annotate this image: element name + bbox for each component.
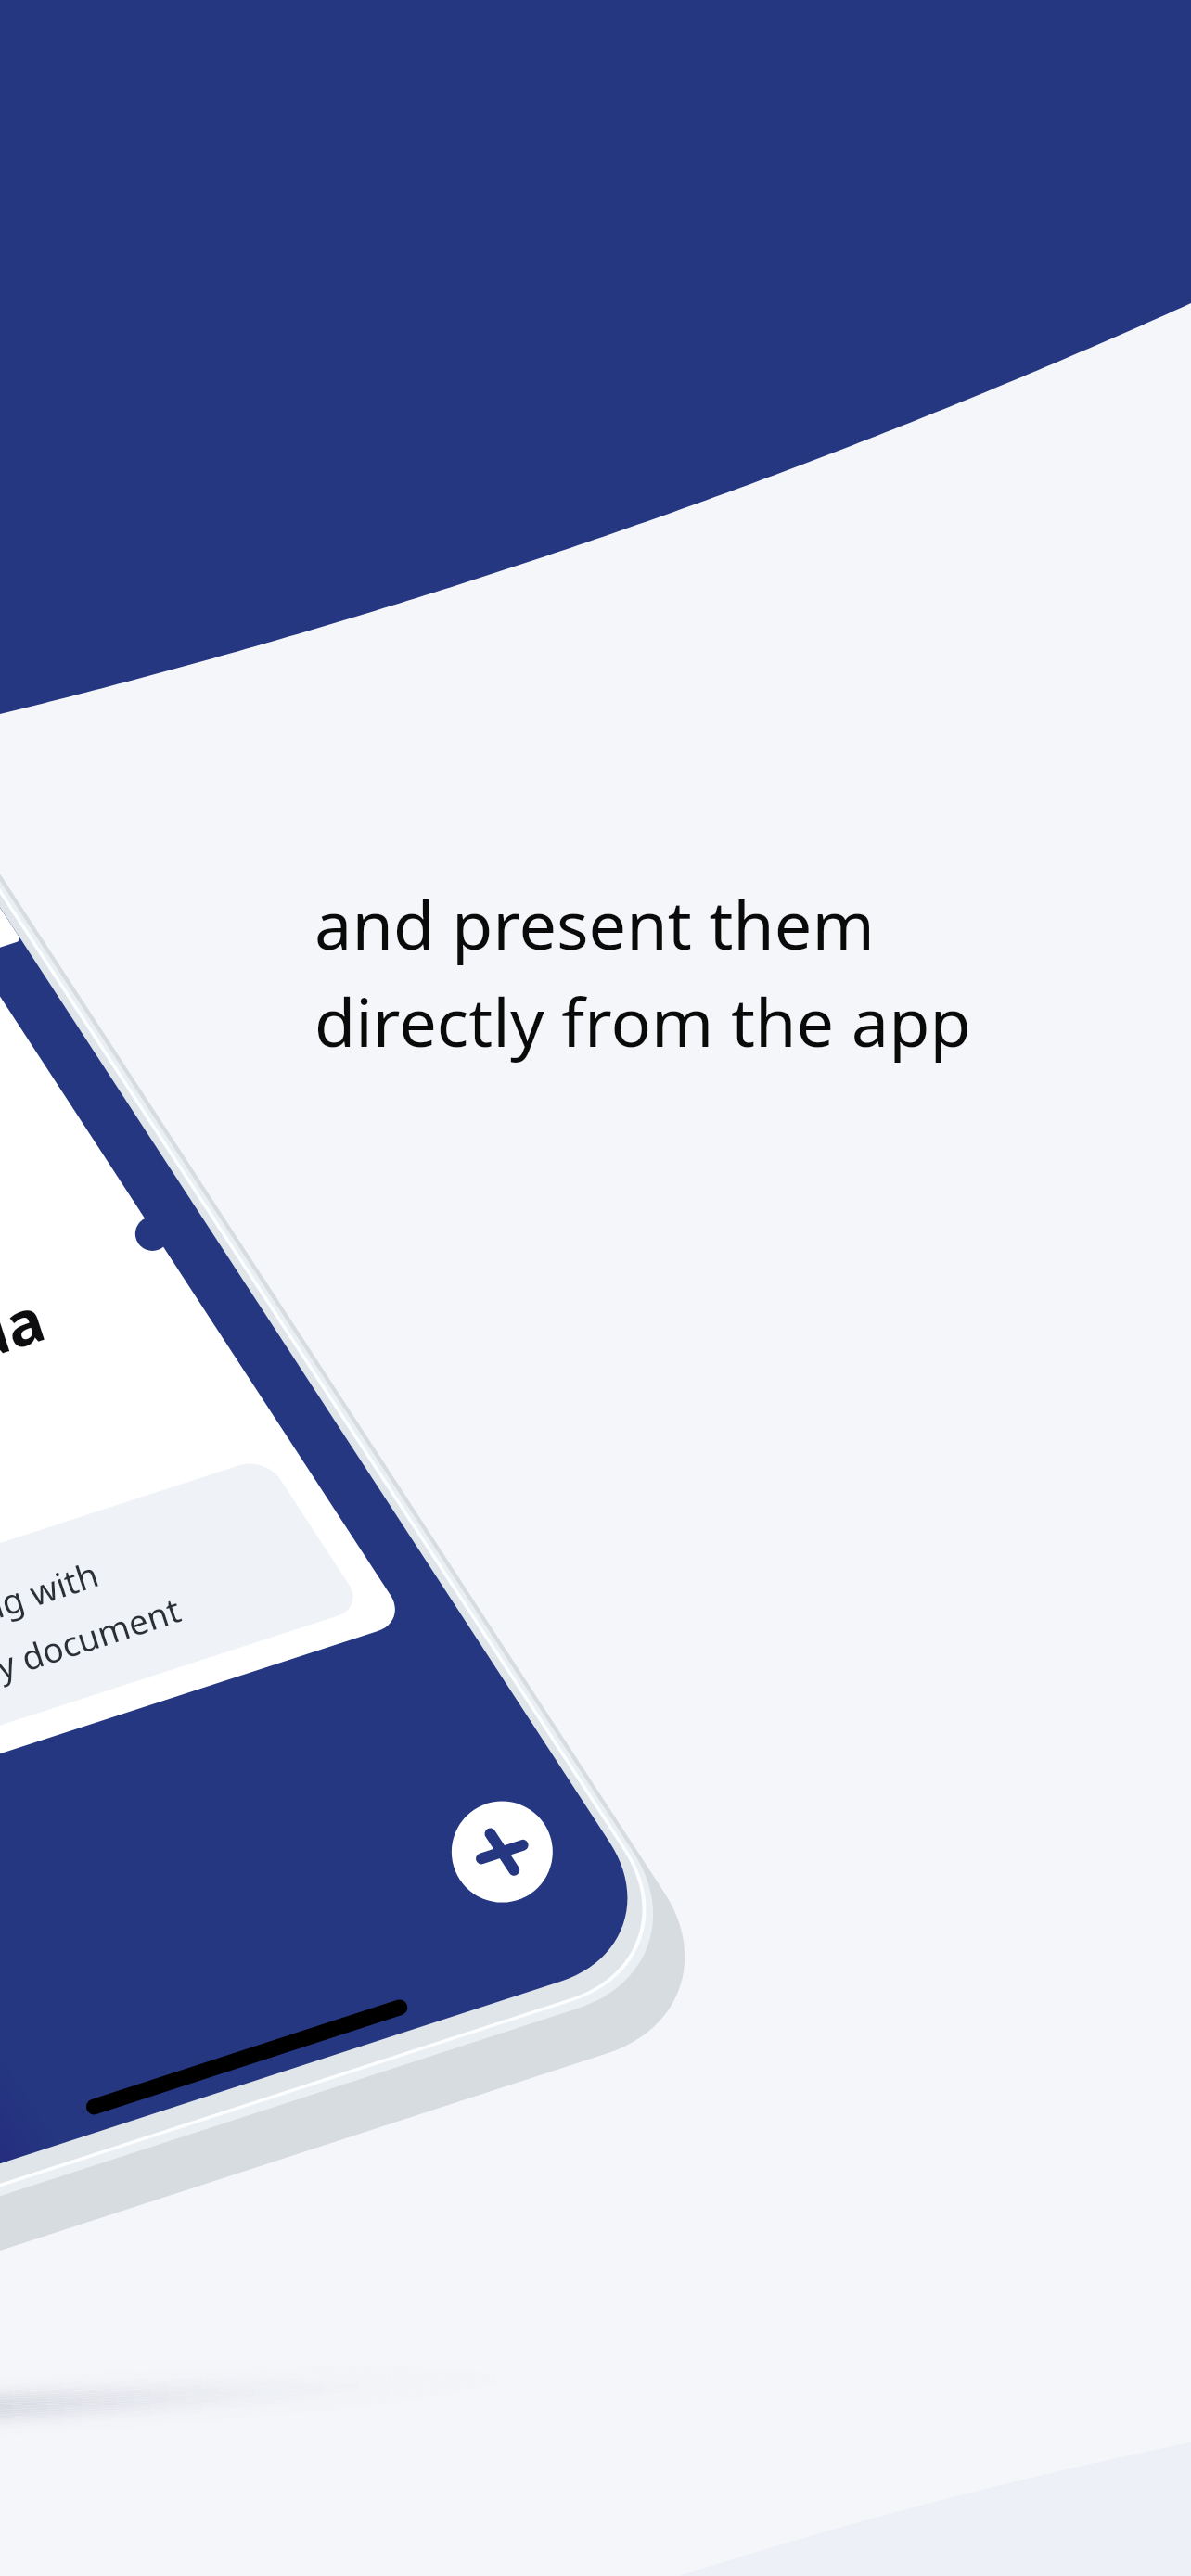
button[interactable]: Add [451,1801,553,1903]
button[interactable]: Agenda card [0,927,399,1743]
button[interactable]: Present documents directly from the app [0,0,1191,2576]
